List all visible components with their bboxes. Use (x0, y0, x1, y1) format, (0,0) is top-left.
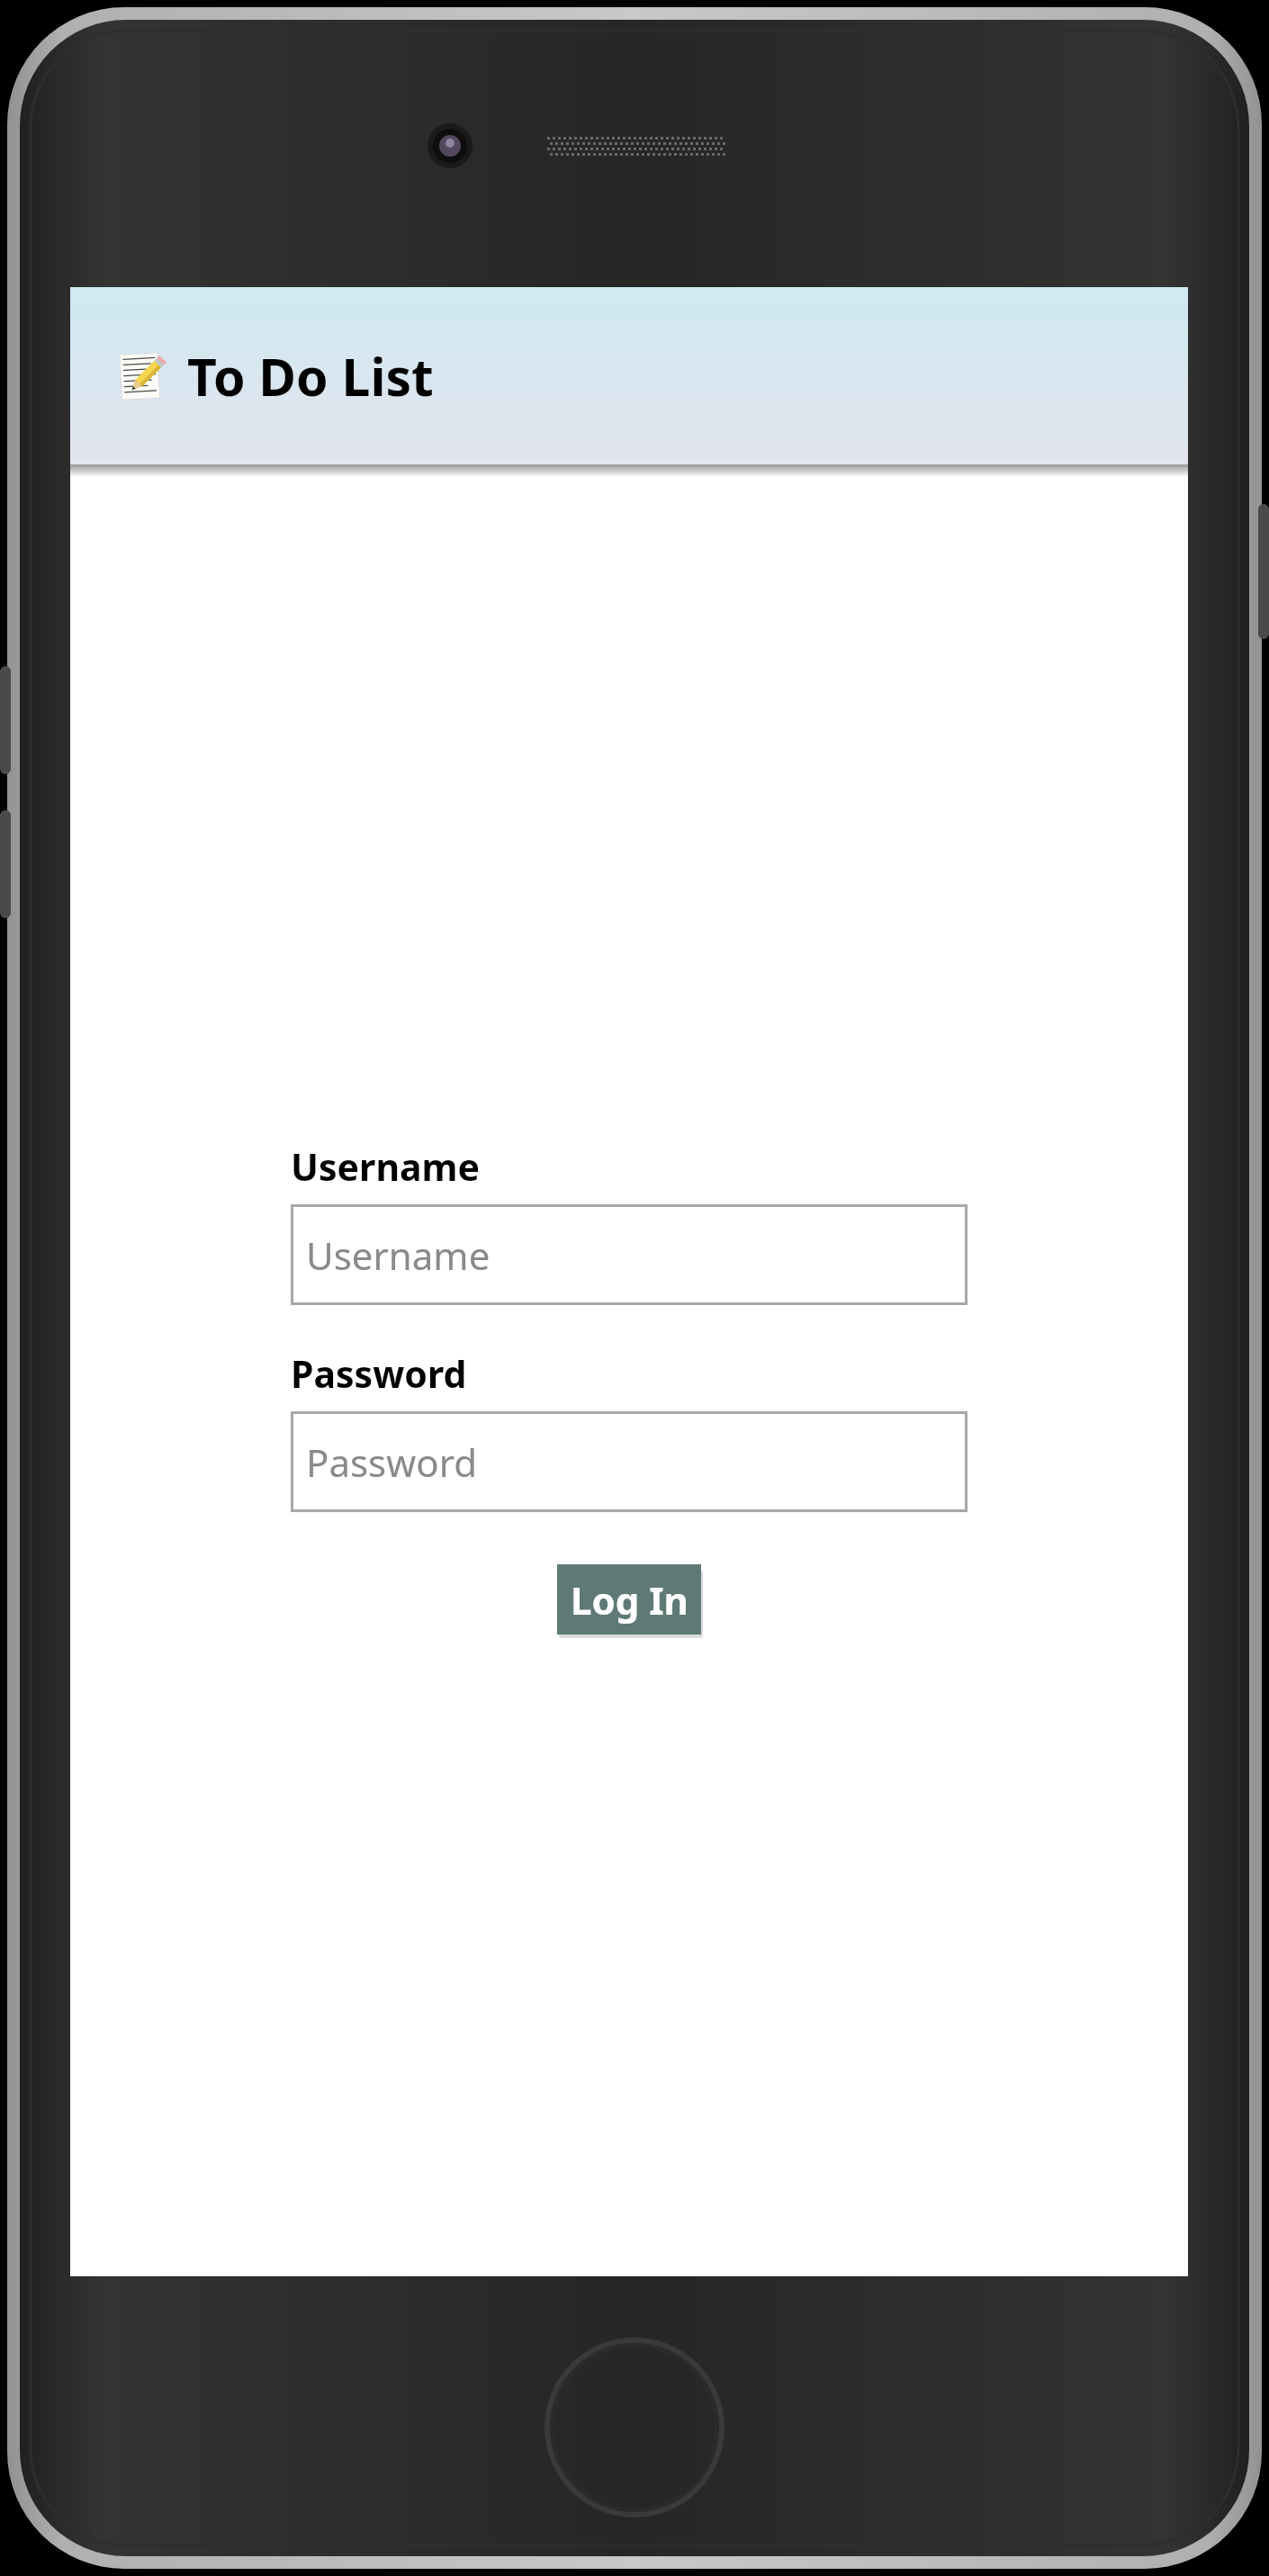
staticText: Password (306, 1437, 477, 1488)
staticText: Log In (571, 1574, 688, 1626)
staticText: Username (291, 1141, 481, 1192)
button[interactable]: Log In (557, 1564, 701, 1635)
button[interactable]: Username (291, 1204, 967, 1305)
staticText: To Do List (187, 341, 434, 411)
staticText: Username (306, 1229, 490, 1281)
staticText: Password (291, 1348, 467, 1399)
button[interactable]: Password (291, 1411, 967, 1512)
button[interactable]: Memo (70, 287, 1188, 464)
other: Memo (115, 350, 167, 402)
